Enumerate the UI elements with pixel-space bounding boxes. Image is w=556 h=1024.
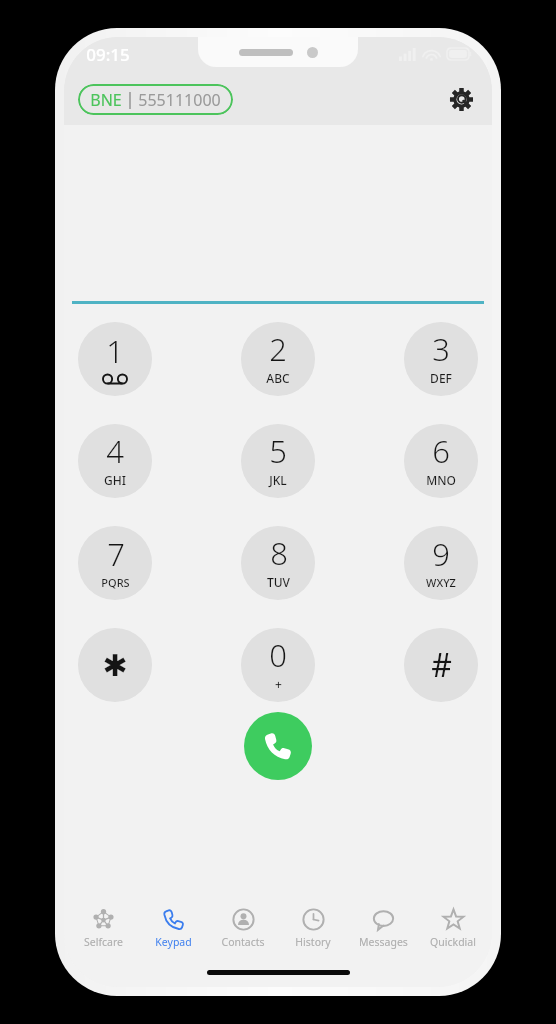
button[interactable]: Call (244, 712, 312, 780)
button[interactable]: Settings (444, 82, 478, 116)
staticText: History (295, 935, 331, 949)
staticText: 6 (432, 430, 450, 472)
button[interactable]: ✱ (78, 628, 152, 702)
button[interactable]: BNE (78, 84, 233, 115)
button[interactable]: 6 (404, 424, 478, 498)
staticText: Keypad (155, 935, 192, 949)
staticText: + (275, 676, 282, 692)
staticText: Quickdial (430, 935, 476, 949)
button[interactable]: Selfcare (68, 899, 138, 957)
button[interactable]: Messages (348, 899, 418, 957)
staticText: ✱ (102, 648, 128, 683)
staticText: 0 (269, 634, 287, 676)
button[interactable]: 0 (241, 628, 315, 702)
staticText: DEF (430, 370, 452, 386)
staticText: 555111000 (138, 89, 221, 111)
staticText: # (431, 643, 452, 687)
staticText: JKL (269, 472, 287, 488)
button[interactable]: # (404, 628, 478, 702)
button[interactable]: 2 (241, 322, 315, 396)
staticText: Contacts (221, 935, 265, 949)
staticText: 8 (270, 532, 288, 574)
staticText: 3 (432, 328, 450, 370)
staticText: 4 (106, 430, 124, 472)
button[interactable]: 7 (78, 526, 152, 600)
staticText: 1 (106, 330, 124, 372)
button[interactable]: 1 (78, 322, 152, 396)
staticText: 09:15 (86, 43, 130, 66)
staticText: MNO (426, 472, 456, 488)
button[interactable]: 8 (241, 526, 315, 600)
button[interactable]: History (278, 899, 348, 957)
staticText: ABC (266, 370, 290, 386)
staticText: 5 (269, 430, 287, 472)
staticText: Selfcare (84, 935, 123, 949)
staticText: GHI (104, 472, 126, 488)
button[interactable]: Keypad (138, 899, 208, 957)
staticText: 7 (107, 533, 125, 575)
staticText: TUV (267, 574, 290, 590)
button[interactable]: Contacts (208, 899, 278, 957)
staticText: 9 (432, 533, 450, 575)
staticText: Messages (359, 935, 408, 949)
button[interactable]: Quickdial (418, 899, 488, 957)
staticText: PQRS (101, 575, 130, 590)
staticText: 2 (269, 328, 287, 370)
button[interactable]: 5 (241, 424, 315, 498)
staticText: WXYZ (426, 575, 456, 590)
button[interactable]: 3 (404, 322, 478, 396)
button[interactable]: 9 (404, 526, 478, 600)
staticText: BNE (90, 89, 122, 111)
button[interactable]: 4 (78, 424, 152, 498)
